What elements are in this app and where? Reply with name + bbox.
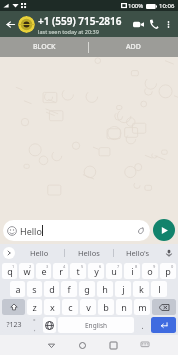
staticText: h [102,283,108,295]
staticText: 5 [81,264,84,269]
button[interactable]: w [19,263,34,279]
button[interactable]: q [2,263,17,279]
button[interactable]: z [27,299,42,315]
button[interactable]: k [133,281,149,297]
button[interactable]: r [53,263,68,279]
button[interactable]: o [142,263,158,279]
button[interactable]: Enter [151,317,176,333]
button[interactable]: ?123 [2,317,26,333]
button[interactable]: Recent apps [98,335,129,355]
staticText: 1 [12,264,15,269]
staticText: Hello [30,248,49,258]
button[interactable]: n [116,299,132,315]
button[interactable]: h [97,281,113,297]
staticText: 0 [171,264,174,269]
button[interactable]: Voice input [162,246,175,259]
button[interactable]: x [44,299,60,315]
staticText: 10:06 [159,2,175,10]
button[interactable]: Back [36,335,67,355]
button[interactable]: s [27,281,42,297]
staticText: r [59,265,63,277]
button[interactable]: i [124,263,140,279]
button[interactable]: m [134,299,150,315]
button[interactable]: More options [162,18,175,31]
staticText: 4 [63,264,66,269]
staticText: +1 (559) 715-2816 [38,14,122,28]
button[interactable]: Hello [15,244,64,261]
button[interactable]: l [151,281,167,297]
button[interactable]: j [115,281,131,297]
staticText: t [76,265,80,277]
button[interactable]: t [70,263,86,279]
staticText: 6 [99,264,102,269]
staticText: last seen today at 20:39 [38,28,99,35]
staticText: 2 [29,264,32,269]
button[interactable]: Symbols [28,317,41,333]
staticText: f [67,283,71,295]
staticText: y [94,265,99,277]
button[interactable]: . [136,317,149,333]
staticText: Hello's [126,248,150,258]
staticText: , [34,325,36,333]
staticText: i [131,265,134,277]
button[interactable]: Hello [7,220,146,241]
button[interactable]: Hellos [65,244,113,261]
button[interactable] [18,16,35,33]
staticText: j [122,283,125,295]
button[interactable]: English [58,317,134,333]
button[interactable]: Change language [43,317,56,333]
staticText: m [138,301,147,313]
staticText: e [41,265,47,277]
staticText: x [50,301,55,313]
staticText: English [85,321,108,330]
button[interactable]: Home [67,335,98,355]
staticText: o [147,265,153,277]
button[interactable]: u [106,263,122,279]
button[interactable]: c [62,299,78,315]
button[interactable]: b [98,299,114,315]
button[interactable]: e [36,263,51,279]
button[interactable]: p [160,263,176,279]
staticText: k [139,283,144,295]
staticText: ADD [126,42,141,52]
staticText: 8 [135,264,138,269]
staticText: . [141,320,144,331]
staticText: q [7,265,13,277]
staticText: Hellos [78,248,100,258]
staticText: ?123 [6,320,22,330]
staticText: l [158,283,161,295]
staticText: 3 [46,264,49,269]
button[interactable]: Hide keyboard [129,335,160,355]
staticText: z [32,301,37,313]
staticText: p [165,265,171,277]
button[interactable]: ADD [89,37,178,57]
button[interactable]: d [44,281,59,297]
button[interactable]: g [79,281,95,297]
button[interactable]: Send [153,219,175,241]
staticText: d [49,283,55,295]
staticText: c [68,301,73,313]
staticText: b [103,301,109,313]
button[interactable]: Back [3,17,17,31]
staticText: n [121,301,127,313]
staticText: g [84,283,90,295]
button[interactable]: Attach [135,225,146,236]
button[interactable]: BLOCK [0,37,88,57]
staticText: 9 [153,264,156,269]
button[interactable]: f [61,281,77,297]
staticText: w [23,265,31,277]
button[interactable]: y [88,263,104,279]
button[interactable]: Shift [2,299,25,315]
staticText: BLOCK [33,42,56,52]
staticText: v [86,301,91,313]
staticText: 100% [128,2,144,10]
button[interactable]: Expand suggestions [3,247,15,259]
button[interactable]: a [10,281,25,297]
button[interactable]: v [80,299,96,315]
button[interactable]: Video call [130,16,146,32]
staticText: ° [33,317,36,325]
staticText: 7 [117,264,120,269]
button[interactable]: Hello's [114,244,162,261]
button[interactable]: Backspace [152,299,176,315]
button[interactable]: Call [146,16,162,32]
